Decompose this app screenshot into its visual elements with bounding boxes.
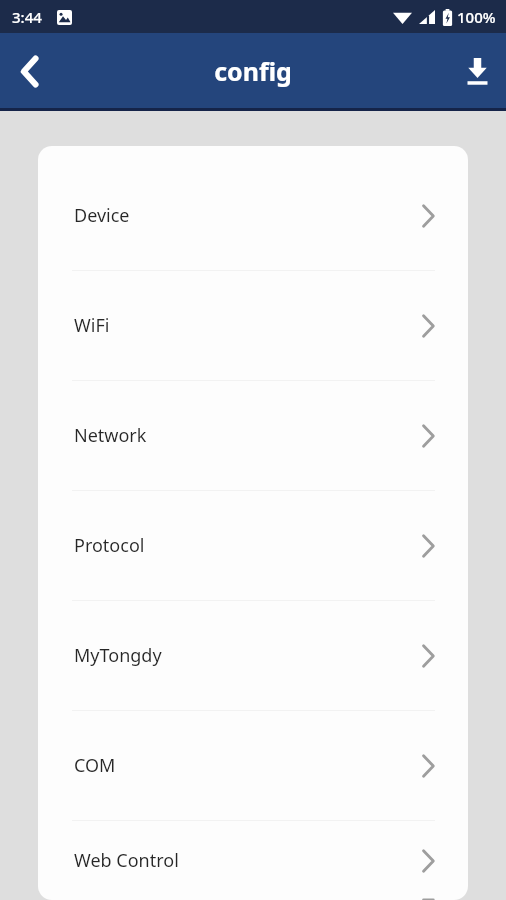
staticText: WiFi — [74, 313, 110, 338]
staticText: 3:44 — [12, 7, 42, 27]
staticText: MyTongdy — [74, 643, 162, 668]
button[interactable]: WiFi — [38, 271, 468, 380]
staticText: config — [214, 54, 292, 88]
staticText: Network — [74, 423, 147, 448]
button[interactable]: Download — [448, 42, 506, 100]
button[interactable]: Device — [38, 161, 468, 270]
button[interactable]: Protocol — [38, 491, 468, 600]
staticText: 100% — [457, 7, 496, 27]
button[interactable]: Back — [0, 42, 58, 100]
button[interactable]: MyTongdy — [38, 601, 468, 710]
button[interactable]: Network — [38, 381, 468, 490]
button[interactable]: Web Control — [38, 821, 468, 900]
staticText: COM — [74, 753, 116, 778]
staticText: Web Control — [74, 848, 179, 873]
staticText: Device — [74, 203, 130, 228]
button[interactable]: COM — [38, 711, 468, 820]
staticText: Protocol — [74, 533, 145, 558]
